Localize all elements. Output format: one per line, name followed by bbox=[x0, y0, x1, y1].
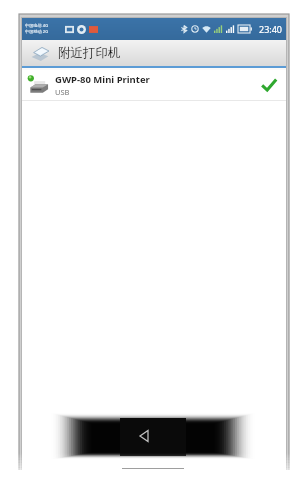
staticText: USB bbox=[55, 87, 70, 97]
staticText: 附近打印机 bbox=[58, 45, 121, 61]
button[interactable]: GWP-80 Mini Printer bbox=[22, 70, 286, 100]
staticText: GWP-80 Mini Printer bbox=[55, 73, 150, 86]
staticText: 中国电信 4G bbox=[25, 23, 49, 29]
staticText: 23:40 bbox=[259, 23, 283, 35]
staticText: 中国移动 2G bbox=[25, 29, 49, 35]
